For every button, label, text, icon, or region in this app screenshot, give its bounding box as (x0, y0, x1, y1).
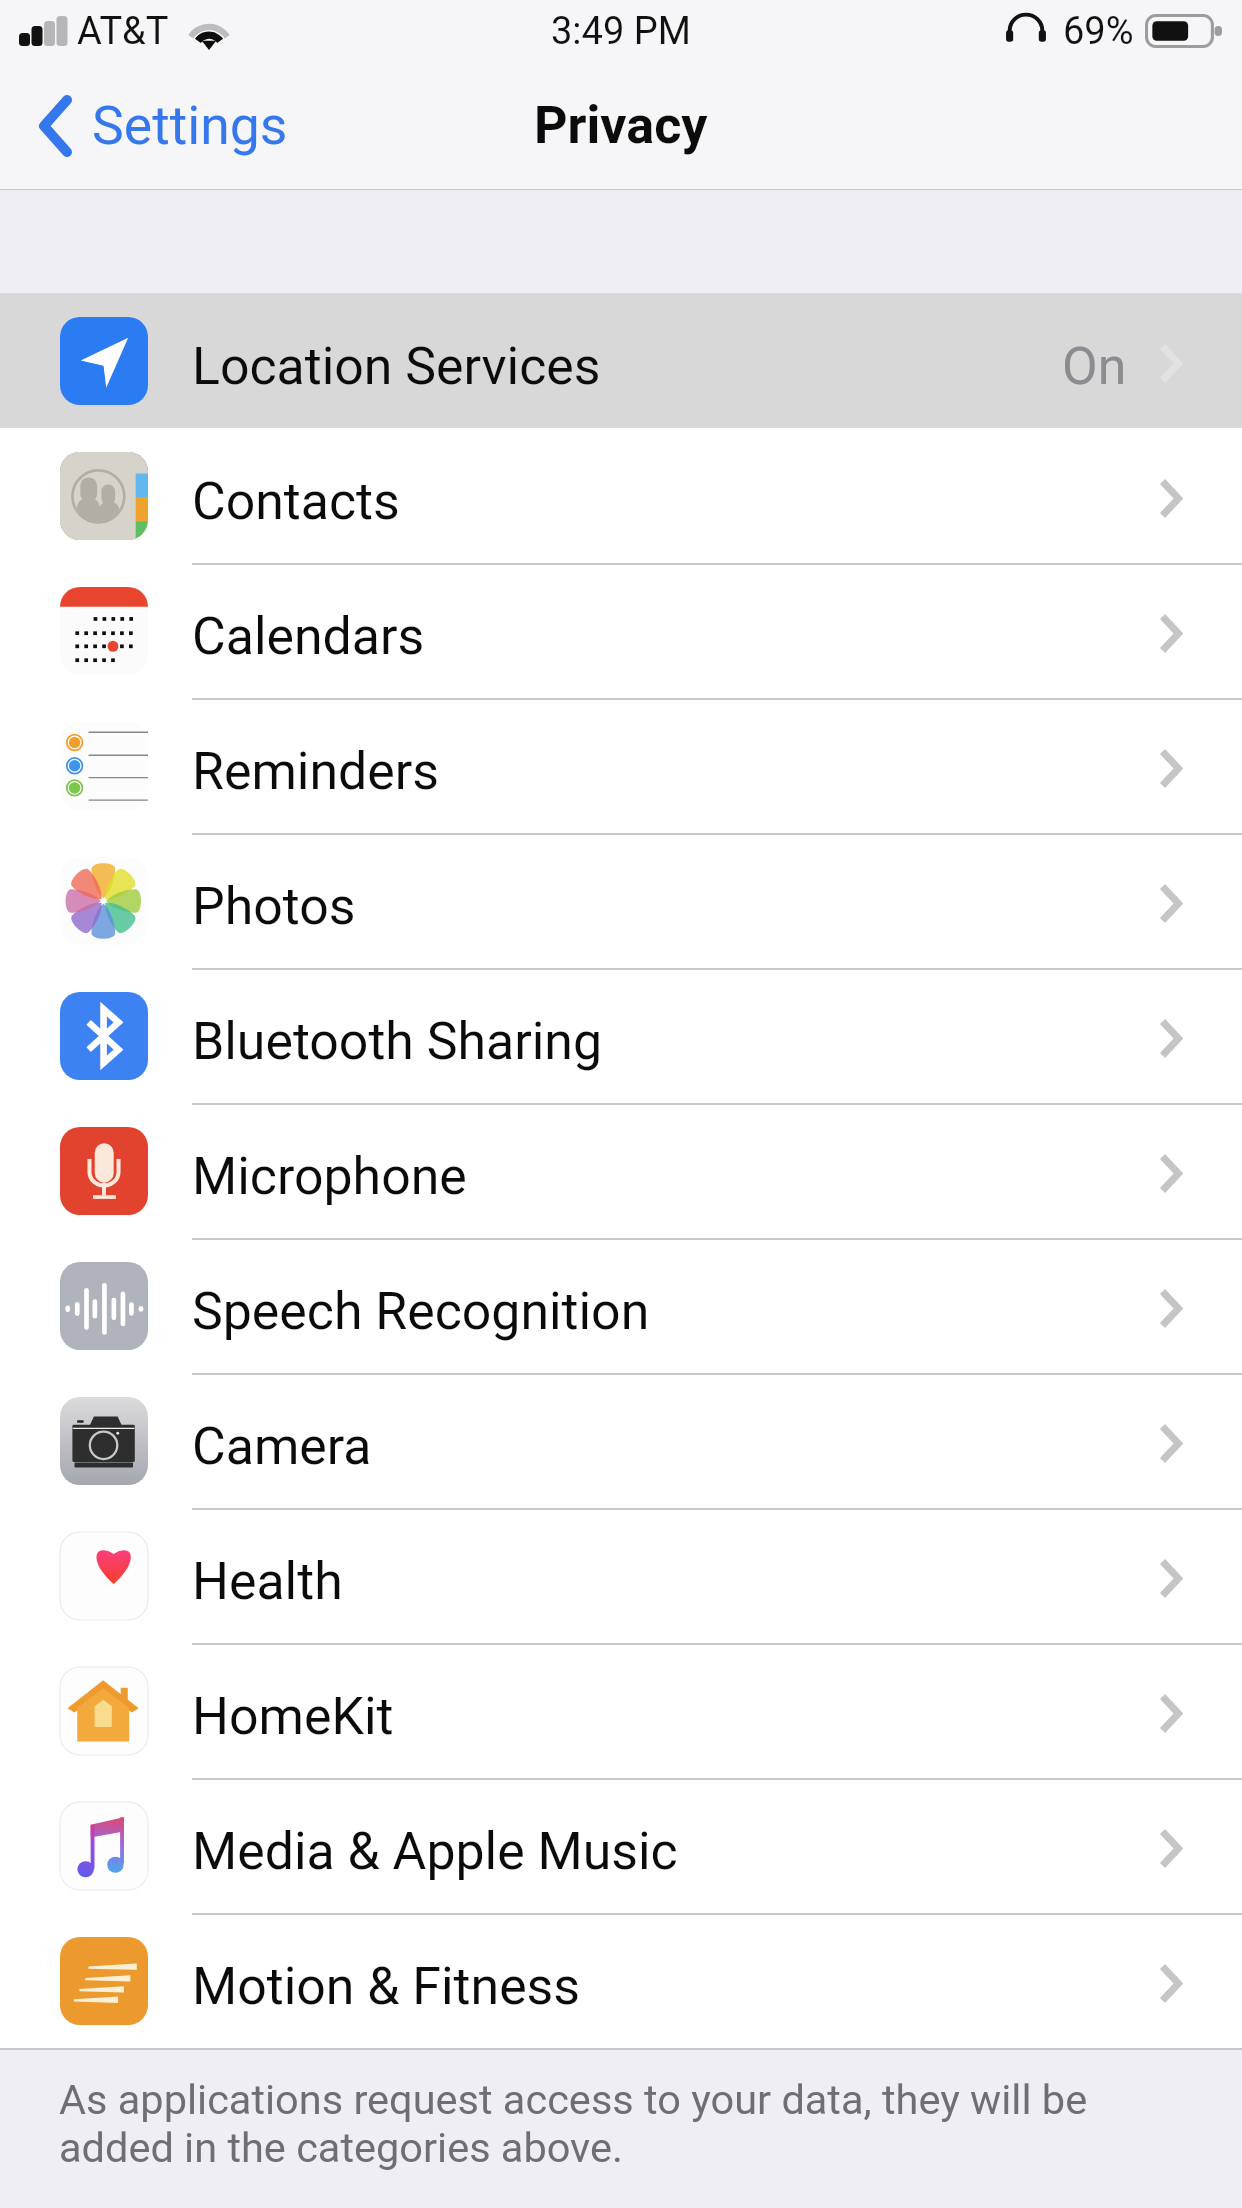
staticText: Motion & Fitness (192, 1956, 581, 2017)
staticText: 69% (1063, 9, 1134, 54)
staticText: AT&T (77, 9, 169, 54)
staticText: Speech Recognition (192, 1281, 650, 1342)
staticText: 3:49 PM (551, 9, 691, 54)
staticText: Media & Apple Music (192, 1821, 678, 1882)
staticText: Bluetooth Sharing (192, 1011, 603, 1072)
staticText: Health (192, 1551, 343, 1612)
staticText: On (1062, 336, 1127, 397)
button[interactable]: Health (0, 1508, 1242, 1643)
button[interactable]: Reminders (0, 698, 1242, 833)
staticText: Camera (192, 1416, 372, 1477)
button[interactable]: Motion & Fitness (0, 1913, 1242, 2048)
button[interactable]: Back to Settings (0, 80, 312, 171)
staticText: Location Services (192, 336, 601, 397)
staticText: Calendars (192, 606, 425, 667)
staticText: As applications request access to your d… (59, 2075, 1126, 2172)
staticText: Microphone (192, 1146, 467, 1207)
button[interactable]: Media & Apple Music (0, 1778, 1242, 1913)
button[interactable]: Microphone (0, 1103, 1242, 1238)
staticText: HomeKit (192, 1686, 394, 1747)
button[interactable]: Calendars (0, 563, 1242, 698)
button[interactable]: Camera (0, 1373, 1242, 1508)
button[interactable]: Speech Recognition (0, 1238, 1242, 1373)
staticText: Reminders (192, 741, 439, 802)
staticText: Photos (192, 876, 356, 937)
button[interactable]: Bluetooth Sharing (0, 968, 1242, 1103)
button[interactable]: HomeKit (0, 1643, 1242, 1778)
staticText: Settings (92, 94, 288, 157)
staticText: Contacts (192, 471, 400, 532)
button[interactable]: Location Services (0, 293, 1242, 428)
button[interactable]: Photos (0, 833, 1242, 968)
staticText: Privacy (534, 95, 708, 156)
button[interactable]: Contacts (0, 428, 1242, 563)
